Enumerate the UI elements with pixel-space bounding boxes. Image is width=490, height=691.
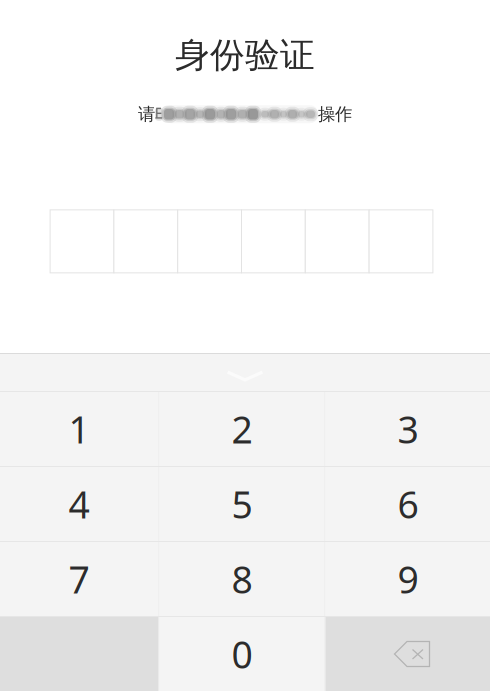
button[interactable]: 8 (159, 542, 324, 616)
staticText: 0 (231, 629, 252, 679)
button[interactable]: 2 (159, 392, 324, 466)
button[interactable]: Verification code digit (114, 210, 178, 273)
staticText: 5 (231, 479, 252, 529)
button[interactable]: 5 (159, 467, 324, 541)
staticText: 3 (397, 404, 418, 454)
staticText: 2 (231, 404, 252, 454)
button[interactable]: 7 (0, 542, 158, 616)
button[interactable]: Verification code digit (50, 210, 114, 273)
staticText: 8 (231, 554, 252, 604)
staticText: 身份验证 (175, 34, 315, 77)
staticText: 6 (397, 479, 418, 529)
button[interactable]: Verification code digit (369, 210, 433, 273)
button[interactable]: 9 (325, 542, 490, 616)
button[interactable]: 0 (159, 617, 324, 691)
button[interactable]: 4 (0, 467, 158, 541)
staticText: 操作 (318, 104, 352, 125)
button[interactable]: Verification code digit (305, 210, 369, 273)
button[interactable]: 1 (0, 392, 158, 466)
staticText: 4 (68, 479, 89, 529)
staticText: 9 (397, 554, 418, 604)
staticText: 1 (68, 404, 89, 454)
button[interactable]: Verification code digit (178, 210, 241, 273)
staticText: 7 (68, 554, 89, 604)
button[interactable]: 3 (325, 392, 490, 466)
staticText: 请 (138, 104, 155, 125)
button[interactable]: 6 (325, 467, 490, 541)
button[interactable]: Delete (325, 617, 490, 691)
